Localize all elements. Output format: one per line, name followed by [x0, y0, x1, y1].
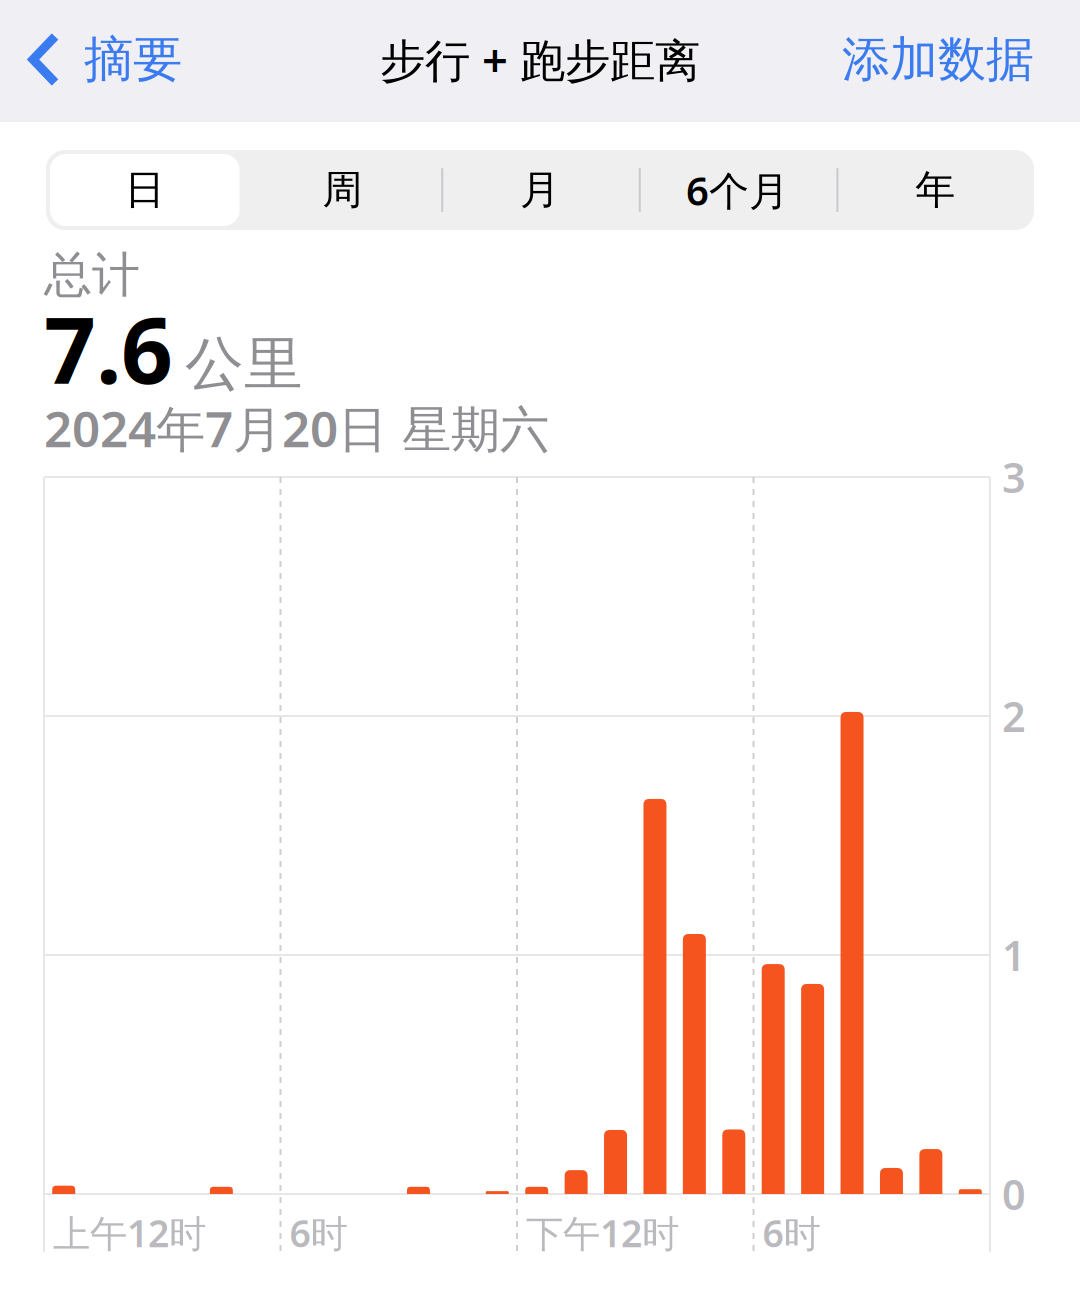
button[interactable]: 周	[244, 150, 441, 230]
staticText: 2024年7月20日 星期六	[44, 395, 549, 461]
button[interactable]: 日	[46, 150, 244, 230]
staticText: 0	[1002, 1167, 1026, 1221]
button[interactable]: 年	[836, 150, 1034, 230]
staticText: 2	[1002, 689, 1026, 743]
button[interactable]: 月	[441, 150, 639, 230]
staticText: 日	[125, 165, 165, 214]
staticText: 公里	[185, 328, 303, 400]
staticText: 6时	[762, 1208, 820, 1258]
button[interactable]: 6个月	[639, 150, 836, 230]
staticText: 1	[1002, 928, 1026, 982]
staticText: 下午12时	[526, 1208, 679, 1258]
staticText: 上午12时	[53, 1208, 206, 1258]
button[interactable]: 摘要	[0, 0, 202, 118]
staticText: 添加数据	[842, 30, 1034, 89]
staticText: 总计	[44, 245, 140, 304]
staticText: 7.6	[44, 288, 173, 409]
staticText: 6个月	[686, 163, 789, 216]
staticText: 周	[322, 165, 362, 214]
staticText: 3	[1002, 450, 1026, 504]
staticText: 6时	[289, 1208, 347, 1258]
staticText: 年	[915, 165, 955, 214]
staticText: 摘要	[84, 29, 182, 90]
button[interactable]: 添加数据	[818, 0, 1080, 118]
staticText: 月	[520, 165, 560, 214]
staticText: 步行 + 跑步距离	[380, 29, 700, 90]
